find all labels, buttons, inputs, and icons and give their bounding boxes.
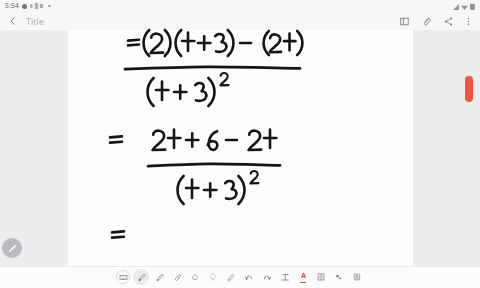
button[interactable]: Undo	[241, 269, 257, 285]
button[interactable]: Insert image	[313, 269, 329, 285]
button[interactable]: Page layout	[396, 13, 412, 29]
staticText: 5:54	[5, 1, 19, 11]
button[interactable]: More options	[460, 13, 476, 29]
button[interactable]: Pen	[133, 269, 149, 285]
button[interactable]: Keyboard	[115, 269, 131, 285]
button[interactable]: Shapes	[187, 269, 203, 285]
button[interactable]: Highlighter colour	[465, 76, 473, 102]
button[interactable]: Attach	[418, 13, 434, 29]
button[interactable]: Share	[440, 13, 456, 29]
button[interactable]: Pointer	[331, 269, 347, 285]
button[interactable]: Back	[5, 13, 21, 29]
button[interactable]: Select	[223, 269, 239, 285]
button[interactable]: Lasso	[205, 269, 221, 285]
button[interactable]: Highlighter	[151, 269, 167, 285]
button[interactable]: Redo	[259, 269, 275, 285]
button[interactable]: Lock	[349, 269, 365, 285]
button[interactable]: Edit	[2, 238, 22, 258]
button[interactable]: Text colour	[295, 269, 311, 285]
button[interactable]: Eraser	[169, 269, 185, 285]
button[interactable]: Text	[277, 269, 293, 285]
staticText: A	[301, 271, 306, 281]
staticText: Title	[26, 15, 44, 27]
